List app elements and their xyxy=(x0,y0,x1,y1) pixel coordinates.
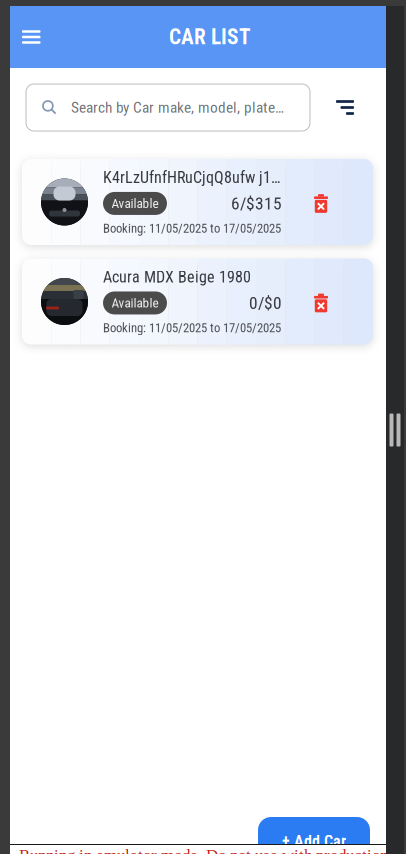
staticText: 6/$315 xyxy=(231,193,282,214)
staticText: Acura MDX Beige 1980 xyxy=(103,268,251,286)
button[interactable]: Filter xyxy=(326,90,364,125)
staticText: Booking: 11/05/2025 to 17/05/2025 xyxy=(103,320,281,335)
staticText: K4rLzUfnfHRuCjqQ8ufw j1… xyxy=(103,168,280,187)
staticText: Running in emulator mode. Do not use wit… xyxy=(19,846,406,854)
staticText: 0/$0 xyxy=(249,293,282,313)
staticText: Booking: 11/05/2025 to 17/05/2025 xyxy=(103,221,281,236)
staticText: Available xyxy=(111,295,158,311)
staticText: CAR LIST xyxy=(169,24,251,49)
staticText: Available xyxy=(111,196,158,211)
button[interactable]: Menu xyxy=(10,14,52,60)
button[interactable]: + Add Car xyxy=(258,817,370,844)
button[interactable]: K4rLzUfnfHRuCjqQ8ufw j1… xyxy=(22,159,373,245)
button[interactable]: Acura MDX Beige 1980 xyxy=(22,258,373,344)
staticText: + Add Car xyxy=(282,832,346,851)
staticText: Search by Car make, model, plate… xyxy=(71,98,284,116)
